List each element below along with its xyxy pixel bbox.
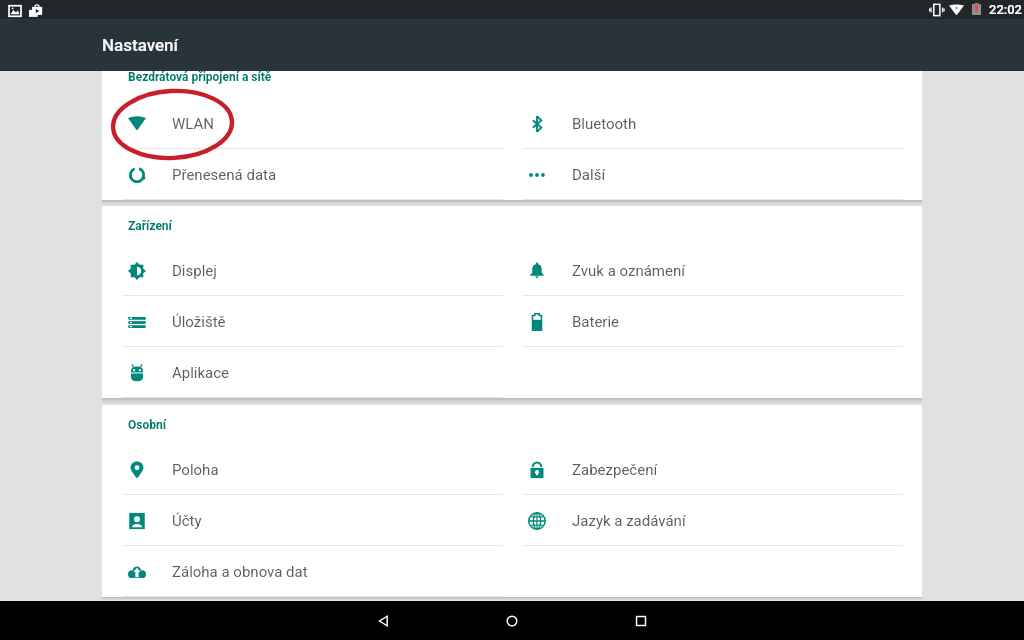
button[interactable]: Displej [102,245,502,296]
button[interactable]: Zvuk a oznámení [502,245,902,296]
button[interactable]: Baterie [502,296,902,347]
button[interactable]: Záloha a obnova dat [102,546,502,597]
staticText: Zabezpečení [572,461,658,479]
staticText: Aplikace [172,364,230,382]
staticText: Nastavení [102,35,179,55]
staticText: Záloha a obnova dat [172,563,308,581]
staticText: Bezdrátová připojení a sítě [128,70,272,84]
staticText: WLAN [172,115,215,133]
staticText: Osobní [128,418,166,432]
button[interactable]: Aplikace [102,347,502,398]
staticText: Bluetooth [572,115,637,133]
staticText: Přenesená data [172,166,277,184]
staticText: Jazyk a zadávání [572,512,686,530]
button[interactable]: Home [482,601,542,640]
button[interactable]: Bluetooth [502,98,902,149]
staticText: 22:02 [989,2,1022,17]
staticText: Poloha [172,461,219,479]
button[interactable]: Další [502,149,902,200]
staticText: Zvuk a oznámení [572,262,685,280]
staticText: Displej [172,262,217,280]
button[interactable]: Přenesená data [102,149,502,200]
button[interactable]: Back [354,601,414,640]
staticText: Baterie [572,313,620,331]
button[interactable]: WLAN [102,98,502,149]
button[interactable]: Zabezpečení [502,444,902,495]
staticText: Účty [172,512,202,530]
staticText: Úložiště [172,313,226,331]
button[interactable]: Účty [102,495,502,546]
button[interactable]: Úložiště [102,296,502,347]
button[interactable]: Recent apps [611,601,671,640]
button[interactable]: Poloha [102,444,502,495]
button[interactable]: Jazyk a zadávání [502,495,902,546]
staticText: Zařízení [128,219,172,233]
staticText: Další [572,166,606,184]
